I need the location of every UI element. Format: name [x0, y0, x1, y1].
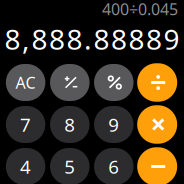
button[interactable]: Minus	[137, 147, 177, 184]
staticText: AC	[16, 72, 36, 93]
staticText: 6	[108, 154, 119, 179]
button[interactable]: Divide	[137, 63, 177, 102]
button[interactable]: AC	[6, 64, 45, 101]
button[interactable]: 7	[6, 106, 45, 143]
button[interactable]: 6	[94, 148, 133, 184]
staticText: 5	[64, 154, 75, 179]
button[interactable]: 5	[50, 148, 89, 184]
staticText: 7	[20, 112, 31, 137]
button[interactable]: Percent	[94, 64, 133, 101]
button[interactable]: 4	[6, 148, 45, 184]
button[interactable]: 8	[50, 106, 89, 143]
staticText: 8	[64, 112, 75, 137]
button[interactable]: Plus minus	[50, 64, 89, 101]
button[interactable]: Multiply	[137, 105, 177, 144]
staticText: 9	[108, 112, 119, 137]
button[interactable]: 9	[94, 106, 133, 143]
staticText: 400÷0.045	[102, 0, 178, 20]
staticText: 4	[20, 154, 31, 179]
staticText: 8,888.88889	[4, 20, 179, 58]
